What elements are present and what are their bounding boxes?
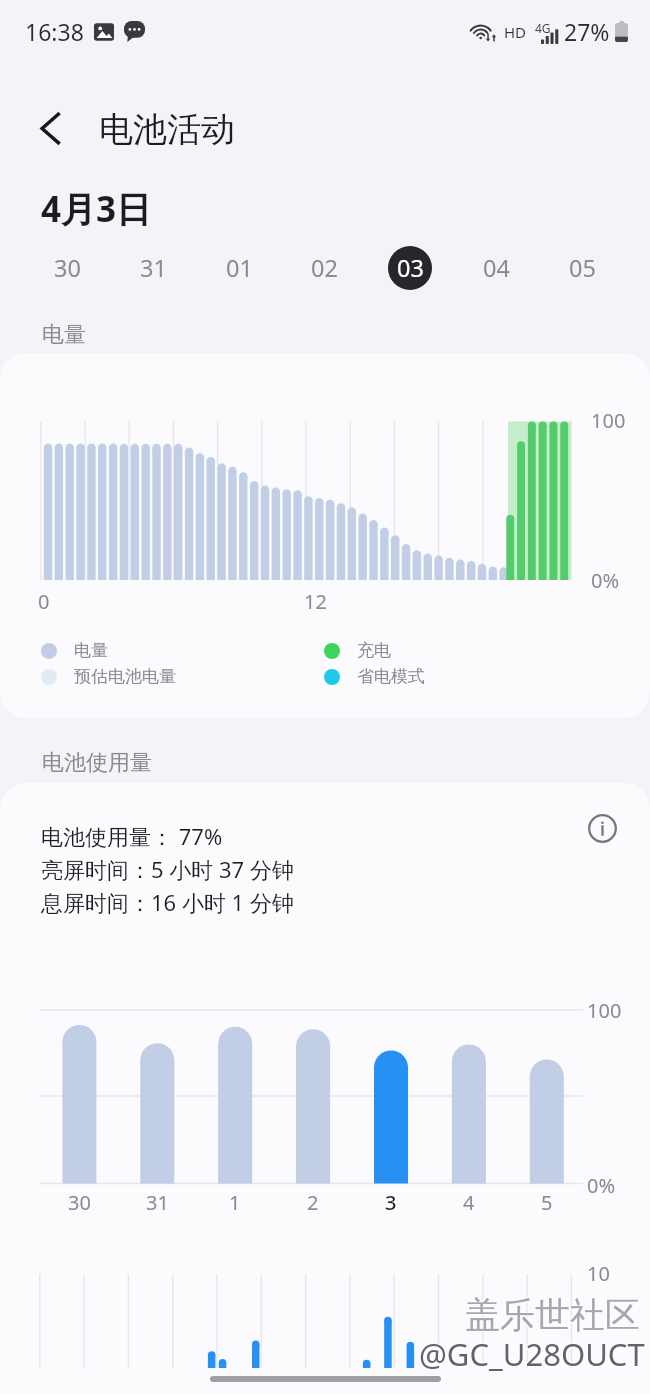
staticText: 盖乐世社区 [465, 1294, 640, 1338]
staticText: 息屏时间：16 小时 1 分钟 [41, 887, 294, 917]
staticText: 31 [146, 1189, 169, 1215]
staticText: 16:38 [25, 16, 84, 47]
staticText: 01 [226, 252, 253, 284]
staticText: 盖乐世社区 [465, 1292, 640, 1336]
staticText: 电池使用量 [42, 749, 152, 777]
staticText: 3 [385, 1189, 397, 1215]
staticText: 100 [591, 407, 626, 434]
staticText: 1 [229, 1189, 241, 1215]
button[interactable]: 充电 [324, 640, 391, 661]
staticText: 02 [311, 252, 338, 284]
staticText: 04 [483, 252, 510, 284]
staticText: 盖乐世社区 [464, 1294, 639, 1338]
staticText: @GC_U28OUCT [420, 1332, 646, 1374]
button[interactable]: 预估电池电量 [41, 666, 176, 687]
staticText: 0% [591, 567, 620, 594]
staticText: 盖乐世社区 [464, 1293, 639, 1337]
staticText: 0% [587, 1172, 616, 1199]
button[interactable]: Info [580, 806, 624, 850]
staticText: 05 [569, 252, 596, 284]
staticText: @GC_U28OUCT [419, 1333, 645, 1375]
staticText: 31 [140, 252, 167, 284]
staticText: 电池活动 [99, 108, 235, 151]
staticText: @GC_U28OUCT [419, 1334, 645, 1376]
staticText: 电量 [42, 321, 86, 349]
staticText: 4月3日 [41, 185, 152, 233]
staticText: 充电 [357, 640, 391, 661]
button[interactable]: 03 [388, 246, 432, 290]
staticText: 盖乐世社区 [465, 1293, 640, 1337]
button[interactable]: Back [26, 104, 74, 152]
staticText: 12 [304, 588, 327, 615]
button[interactable]: 01 [217, 246, 261, 290]
staticText: 03 [397, 252, 424, 284]
button[interactable]: 02 [302, 246, 346, 290]
staticText: @GC_U28OUCT [418, 1332, 644, 1374]
staticText: @GC_U28OUCT [418, 1333, 644, 1375]
staticText: HD [504, 22, 527, 42]
button[interactable]: 30 [45, 246, 89, 290]
staticText: 30 [68, 1189, 91, 1215]
button[interactable]: 31 [131, 246, 175, 290]
button[interactable]: 05 [560, 246, 604, 290]
staticText: 5 [541, 1189, 553, 1215]
staticText: 省电模式 [357, 666, 425, 687]
staticText: 盖乐世社区 [466, 1293, 641, 1337]
staticText: 4G [535, 20, 551, 36]
staticText: 盖乐世社区 [464, 1292, 639, 1336]
staticText: 10 [587, 1260, 610, 1287]
staticText: 预估电池电量 [74, 666, 176, 687]
button[interactable]: 04 [474, 246, 518, 290]
staticText: 2 [307, 1189, 319, 1215]
staticText: 盖乐世社区 [466, 1294, 641, 1338]
staticText: @GC_U28OUCT [420, 1334, 646, 1376]
staticText: @GC_U28OUCT [418, 1334, 644, 1376]
button[interactable]: 电量 [41, 640, 108, 661]
staticText: 27% [564, 16, 610, 47]
staticText: @GC_U28OUCT [420, 1333, 646, 1375]
button[interactable]: 省电模式 [324, 666, 425, 687]
staticText: 电量 [74, 640, 108, 661]
staticText: @GC_U28OUCT [419, 1332, 645, 1374]
staticText: 30 [54, 252, 81, 284]
staticText: 100 [587, 997, 622, 1024]
staticText: 亮屏时间：5 小时 37 分钟 [41, 854, 294, 884]
staticText: 盖乐世社区 [466, 1292, 641, 1336]
staticText: 0 [38, 588, 50, 615]
staticText: 电池使用量： 77% [41, 821, 223, 851]
staticText: 4 [463, 1189, 475, 1215]
